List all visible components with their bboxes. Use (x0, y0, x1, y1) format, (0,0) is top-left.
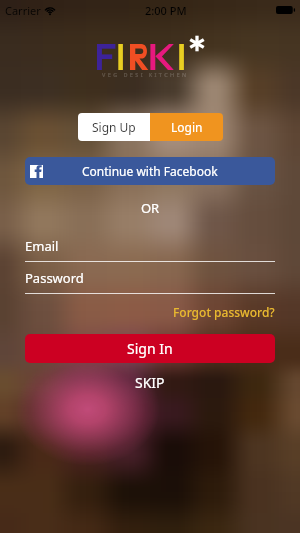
button[interactable]: Sign Up (78, 113, 150, 141)
staticText: Sign Up (92, 119, 136, 135)
staticText: 2:00 PM (145, 3, 187, 18)
button[interactable]: Password (25, 269, 275, 294)
staticText: Email (25, 237, 59, 255)
button[interactable]: Continue with Facebook (25, 157, 275, 185)
button[interactable]: Login (150, 113, 223, 141)
button[interactable]: Forgot password? (173, 304, 275, 320)
button[interactable]: SKIP (135, 373, 165, 392)
staticText: OR (0, 199, 300, 217)
button[interactable]: Email (25, 237, 275, 262)
staticText: Carrier (5, 3, 41, 18)
staticText: Continue with Facebook (82, 163, 218, 179)
button[interactable]: Sign In (25, 334, 275, 363)
staticText: Sign In (127, 339, 173, 358)
staticText: Login (171, 119, 203, 135)
staticText: VEG DESI KITCHEN (102, 71, 189, 78)
staticText: Password (25, 269, 84, 287)
